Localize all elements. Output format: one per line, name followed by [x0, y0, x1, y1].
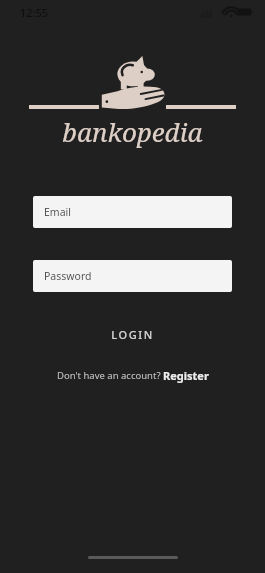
staticText: Don't have an account? — [57, 369, 163, 382]
other: Bankopedia logo — [94, 56, 172, 112]
staticText: Password — [44, 269, 92, 283]
staticText: bankopedia — [0, 114, 265, 149]
staticText: Email — [44, 205, 71, 219]
button[interactable]: LOGIN — [33, 320, 232, 348]
staticText: Register — [163, 368, 209, 383]
button[interactable]: Register — [163, 368, 209, 383]
button[interactable]: Email — [33, 196, 232, 228]
staticText: LOGIN — [33, 327, 232, 342]
staticText: 12:55 — [20, 5, 49, 20]
button[interactable]: Password — [33, 260, 232, 292]
